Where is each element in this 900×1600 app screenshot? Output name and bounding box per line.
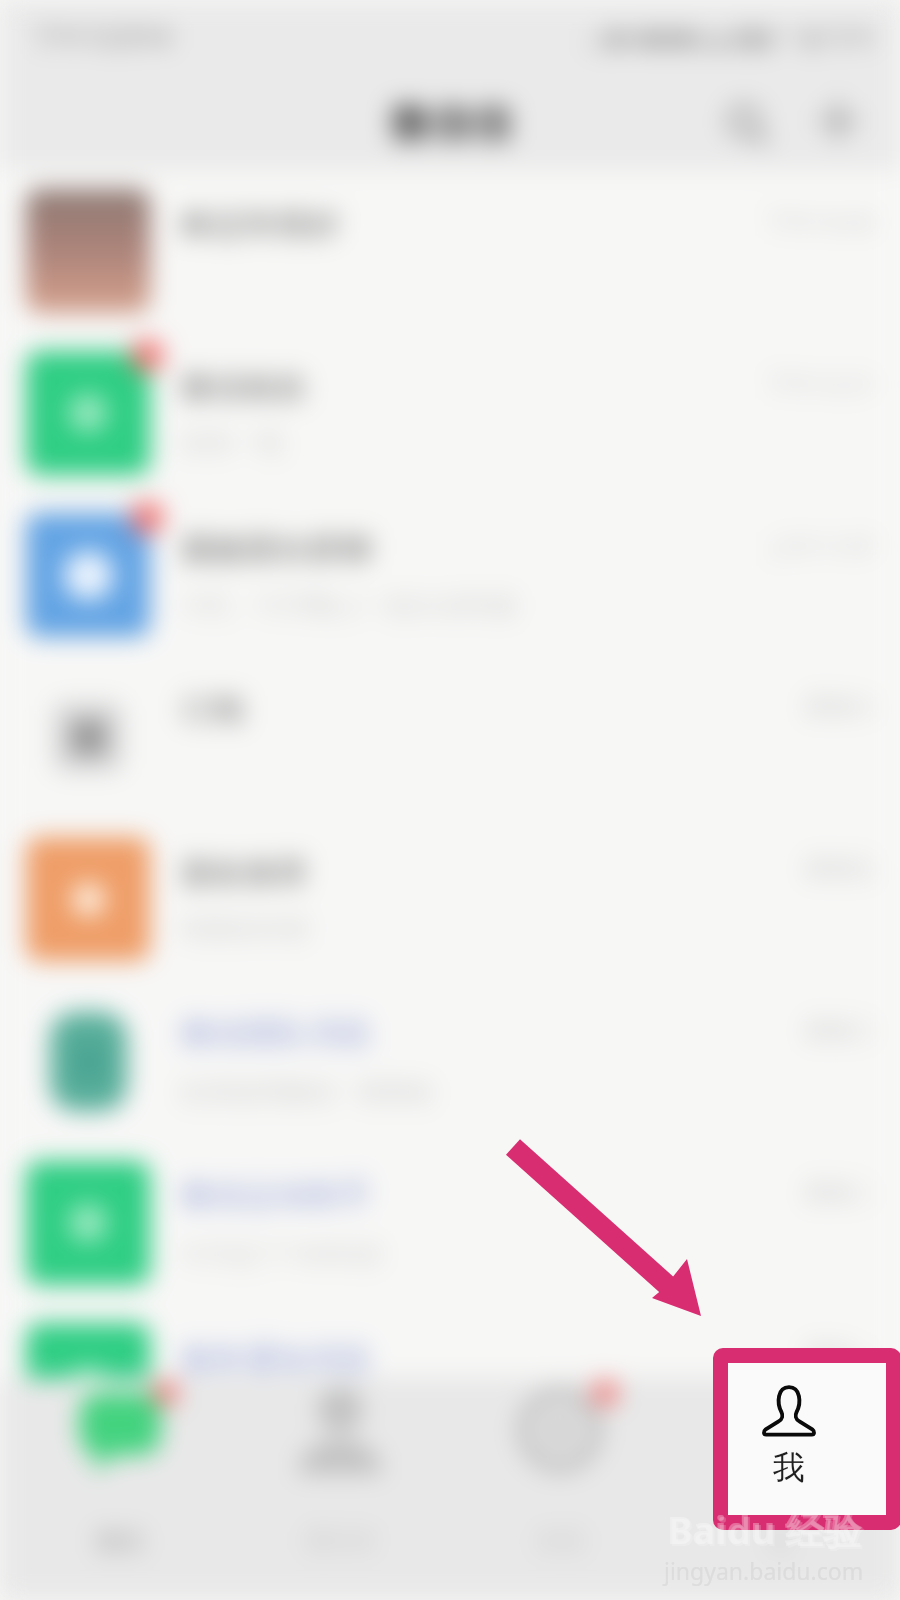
staticText: Baidu 经验 <box>667 1503 861 1555</box>
staticText: 腐败团伙群聊 <box>180 529 372 569</box>
staticText: 下午12:014 <box>32 18 171 55</box>
button[interactable]: 服务通知消息 <box>0 1304 900 1466</box>
staticText: 服务通知消息 <box>180 1339 372 1379</box>
button[interactable]: 我 <box>680 1386 880 1556</box>
staticText: 微信团队消息 <box>180 1013 372 1053</box>
button[interactable]: 林志玲很好 <box>0 170 900 332</box>
button[interactable]: 微信 <box>20 1386 220 1556</box>
button[interactable]: 微信团队消息 <box>0 980 900 1142</box>
button[interactable]: 朋友推荐 <box>0 818 900 980</box>
button[interactable]: 发现 <box>460 1386 660 1556</box>
button[interactable]: Me tab <box>728 1363 886 1515</box>
staticText: 微信运动助手 <box>180 1175 372 1215</box>
button[interactable]: Search <box>720 97 768 145</box>
button[interactable]: 腐败团伙群聊 <box>0 494 900 656</box>
staticText: 微信信 <box>389 98 512 148</box>
staticText: 星期一 <box>804 1340 876 1370</box>
staticText: 林志玲很好 <box>180 204 340 244</box>
staticText: 微信收款 <box>180 367 308 407</box>
staticText: 朋友推荐 <box>180 853 308 893</box>
staticText: 我 <box>768 1526 792 1556</box>
staticText: 您有新的通知 <box>180 1399 336 1432</box>
staticText: 订阅 <box>180 690 244 730</box>
button[interactable]: Add <box>814 97 862 145</box>
staticText: △● ●●● ▲ ▮▮▮ ⚡ ▮ 92% <box>587 19 874 53</box>
staticText: Baidu 经验 <box>669 1505 863 1557</box>
button[interactable]: 微信收款 <box>0 332 900 494</box>
staticText: 我 <box>773 1447 805 1487</box>
staticText: jingyan.baidu.com <box>664 1555 864 1586</box>
button[interactable]: 订阅 <box>0 656 900 818</box>
button[interactable]: 微信运动助手 <box>0 1142 900 1304</box>
button[interactable]: 通讯录 <box>240 1386 440 1556</box>
